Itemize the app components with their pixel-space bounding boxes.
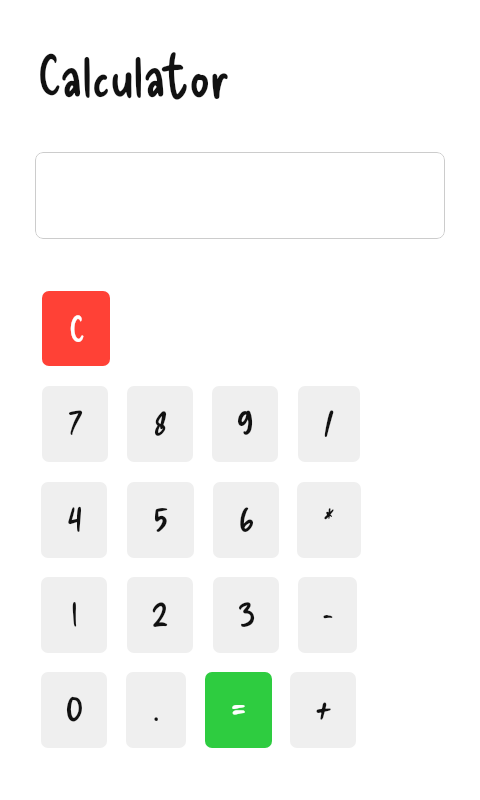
staticText: 8 [153, 391, 168, 445]
staticText: 7 [67, 390, 84, 444]
button[interactable]: 8 [127, 386, 193, 462]
button[interactable]: . [126, 672, 186, 748]
button[interactable]: 6 [213, 482, 279, 558]
button[interactable]: 4 [41, 482, 107, 558]
staticText: . [152, 675, 160, 733]
button[interactable]: C [42, 291, 110, 366]
staticText: / [323, 396, 335, 444]
button[interactable]: 1 [41, 577, 107, 653]
staticText: - [322, 589, 334, 635]
staticText: 0 [65, 677, 84, 731]
button[interactable]: = [205, 672, 272, 748]
button[interactable]: 2 [127, 577, 193, 653]
button[interactable]: / [298, 386, 360, 462]
button[interactable]: 7 [42, 386, 108, 462]
button[interactable]: Expression input [35, 152, 445, 239]
staticText: = [229, 673, 248, 733]
button[interactable]: + [290, 672, 356, 748]
button[interactable]: 0 [41, 672, 107, 748]
staticText: 2 [151, 582, 169, 636]
staticText: + [314, 676, 333, 734]
staticText: 6 [238, 487, 255, 541]
button[interactable]: * [297, 482, 361, 558]
staticText: Calculator [38, 41, 230, 108]
staticText: 9 [236, 390, 254, 444]
button[interactable]: 3 [213, 577, 279, 653]
staticText: C [69, 307, 84, 350]
button[interactable]: 5 [127, 482, 194, 558]
staticText: * [323, 496, 335, 538]
staticText: 5 [153, 487, 169, 541]
button[interactable]: - [298, 577, 357, 653]
staticText: 4 [66, 487, 83, 541]
staticText: 3 [237, 582, 256, 636]
button[interactable]: 9 [212, 386, 278, 462]
staticText: 1 [71, 582, 78, 636]
